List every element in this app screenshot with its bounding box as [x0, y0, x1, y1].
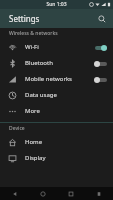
- staticText: Display: [25, 154, 46, 162]
- staticText: Sun 1:03: [46, 1, 67, 8]
- staticText: Home: [25, 138, 43, 146]
- button[interactable]: Bluetooth: [0, 55, 113, 71]
- button[interactable]: Recents: [57, 187, 85, 200]
- button[interactable]: More: [0, 103, 113, 119]
- button[interactable]: Data usage: [0, 87, 113, 103]
- staticText: Device: [9, 125, 25, 132]
- staticText: More: [25, 107, 40, 115]
- staticText: Wireless & networks: [9, 30, 58, 37]
- button[interactable]: Home: [0, 134, 113, 150]
- button[interactable]: Home: [29, 187, 57, 200]
- button[interactable]: Display: [0, 150, 113, 166]
- staticText: Settings: [9, 13, 40, 24]
- staticText: Wi-Fi: [25, 43, 39, 51]
- button[interactable]: Search: [95, 12, 109, 26]
- button[interactable]: Back: [0, 187, 29, 200]
- button[interactable]: Wi-Fi: [0, 39, 113, 55]
- staticText: Data usage: [25, 91, 57, 99]
- button[interactable]: Wi-Fi toggle on: [94, 44, 107, 51]
- staticText: Bluetooth: [25, 59, 53, 67]
- button[interactable]: Mobile networks toggle off: [94, 76, 107, 83]
- button[interactable]: Menu: [85, 187, 113, 200]
- staticText: Mobile networks: [25, 75, 72, 83]
- button[interactable]: Mobile networks: [0, 71, 113, 87]
- button[interactable]: Bluetooth toggle off: [94, 60, 107, 67]
